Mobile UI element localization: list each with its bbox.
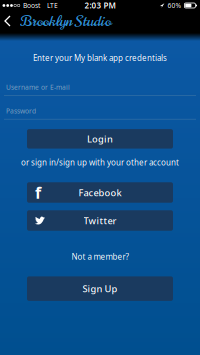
staticText: f — [35, 182, 41, 203]
staticText: 2:03 PM — [84, 0, 115, 11]
button[interactable]: Facebook — [0, 182, 200, 203]
staticText: Sign Up — [82, 282, 117, 295]
button[interactable]: Back — [0, 16, 20, 26]
button[interactable]: Brooklyn Studio — [20, 10, 111, 32]
staticText: Login — [87, 133, 113, 145]
staticText: Boost — [23, 1, 40, 10]
button[interactable]: Username or E-mail — [0, 83, 200, 96]
staticText: Username or E-mail — [6, 83, 70, 91]
button[interactable]: Password — [0, 106, 200, 120]
staticText: Facebook — [78, 186, 121, 199]
staticText: Brooklyn Studio — [20, 10, 111, 32]
staticText: 60% — [167, 1, 181, 10]
button[interactable]: Login — [0, 129, 200, 149]
button[interactable]: Sign Up — [0, 276, 200, 301]
staticText: Twitter — [83, 214, 116, 227]
staticText: LTE — [47, 1, 58, 10]
staticText: Enter your My blank app credentials — [33, 52, 167, 63]
staticText: Password — [6, 106, 36, 115]
staticText: or sign in/sign up with your other accou… — [21, 157, 179, 168]
button[interactable]: Twitter — [0, 210, 200, 231]
staticText: Not a member? — [71, 251, 128, 262]
